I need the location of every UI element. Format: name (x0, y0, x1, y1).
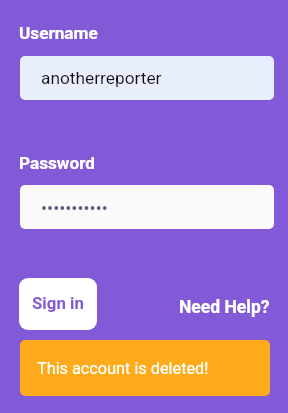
staticText: This account is deleted! (37, 359, 209, 378)
staticText: anotherreporter (41, 68, 162, 88)
staticText: Password (19, 153, 95, 173)
button[interactable]: This account is deleted! (20, 340, 270, 396)
button[interactable]: Password field (20, 185, 274, 229)
staticText: Need Help? (179, 297, 270, 318)
staticText: ••••••••••• (41, 198, 108, 219)
staticText: Sign in (32, 293, 84, 313)
button[interactable]: Username field (20, 56, 274, 100)
button[interactable]: Sign in (19, 278, 97, 330)
button[interactable]: Need Help? (179, 297, 270, 318)
staticText: Username (19, 23, 98, 43)
